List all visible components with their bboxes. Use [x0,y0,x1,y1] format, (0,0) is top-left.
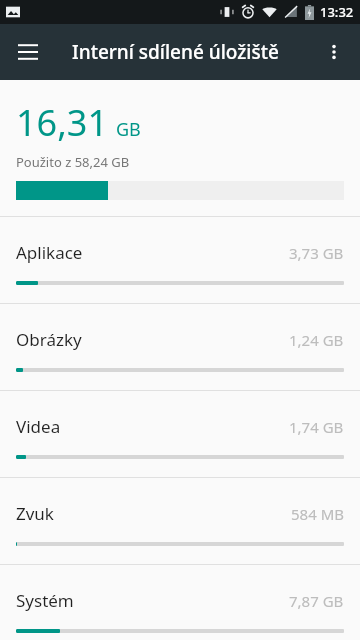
staticText: Aplikace [16,241,289,264]
staticText: 16,31 [16,98,109,147]
staticText: GB [116,117,141,142]
staticText: 13:32 [320,3,354,21]
button[interactable]: Open navigation drawer [8,32,48,72]
button[interactable]: Zvuk [0,478,360,564]
button[interactable]: Aplikace [0,217,360,303]
staticText: Použito z 58,24 GB [16,153,130,171]
staticText: Videa [16,415,289,438]
staticText: Systém [16,589,289,612]
staticText: 3,73 GB [289,243,344,263]
staticText: Interní sdílené úložiště [72,39,279,65]
staticText: 1,74 GB [289,417,344,437]
staticText: 584 MB [291,504,344,524]
button[interactable]: More options [314,32,354,72]
button[interactable]: Obrázky [0,304,360,390]
staticText: Obrázky [16,328,289,351]
staticText: 7,87 GB [289,591,344,611]
staticText: 1,24 GB [289,330,344,350]
button[interactable]: Systém [0,565,360,640]
staticText: Zvuk [16,502,291,525]
button[interactable]: Videa [0,391,360,477]
